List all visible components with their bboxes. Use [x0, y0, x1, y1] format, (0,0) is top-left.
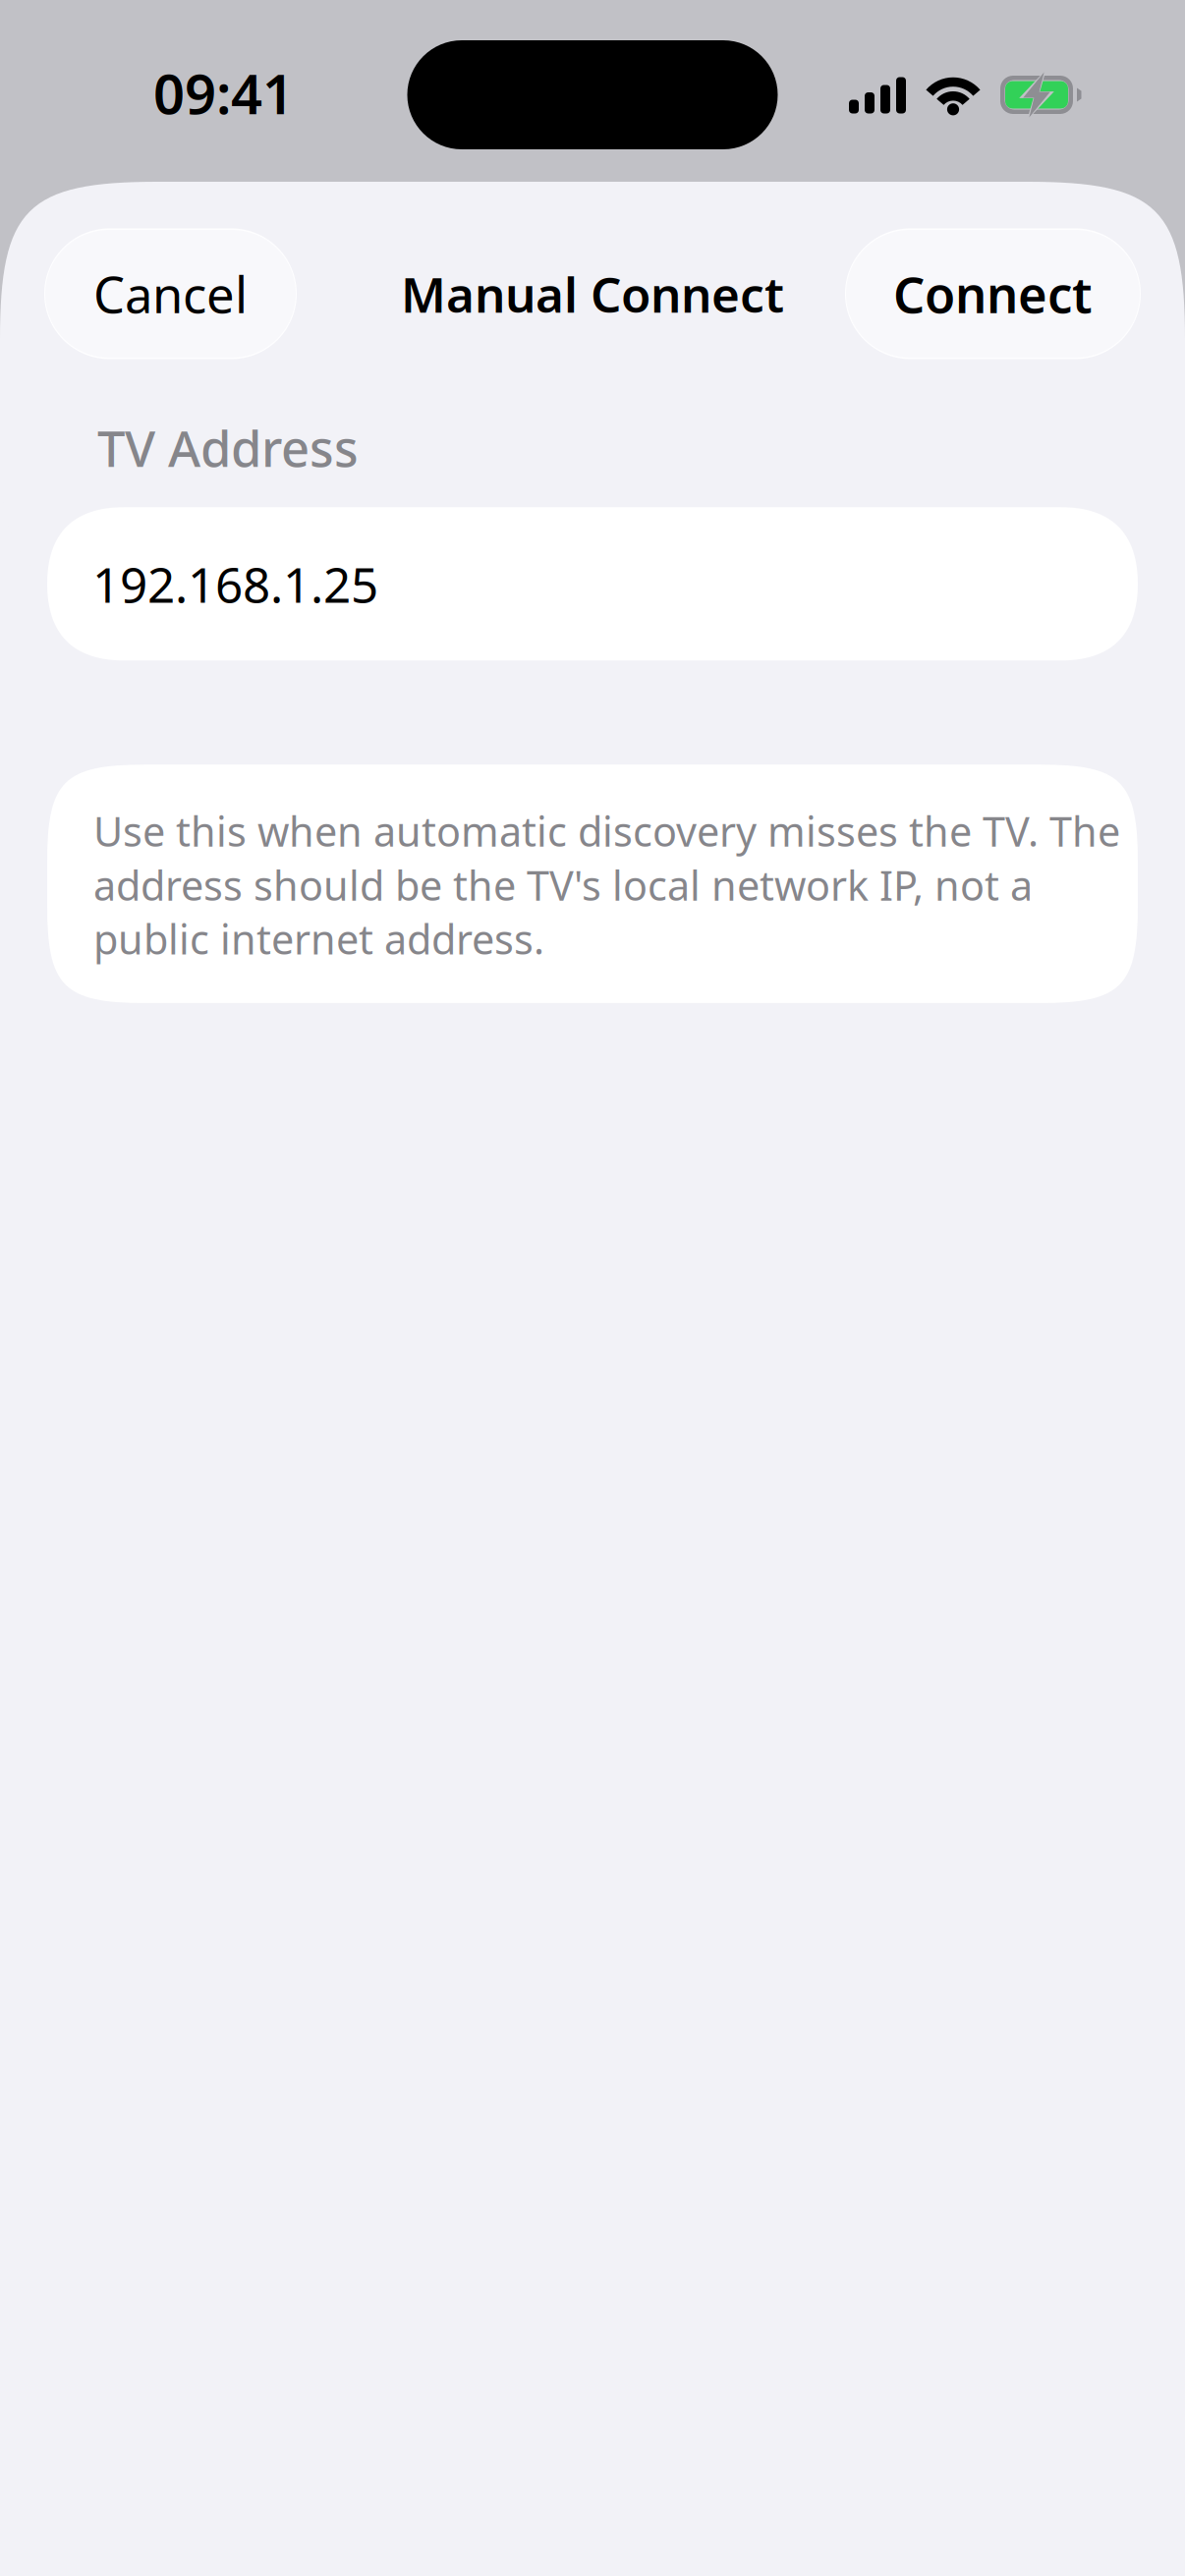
staticText: TV Address [97, 415, 359, 481]
staticText: 09:41 [153, 56, 294, 129]
button[interactable]: Cancel [45, 230, 296, 358]
staticText: Use this when automatic discovery misses… [93, 804, 1120, 858]
staticText: Connect [893, 261, 1093, 327]
staticText: Manual Connect [401, 262, 784, 326]
staticText: Cancel [93, 261, 248, 327]
staticText: 192.168.1.25 [92, 552, 378, 616]
button[interactable]: 192.168.1.25 [47, 507, 1138, 661]
button[interactable]: Connect [846, 230, 1140, 358]
staticText: public internet address. [93, 912, 544, 966]
staticText: address should be the TV's local network… [93, 858, 1033, 912]
